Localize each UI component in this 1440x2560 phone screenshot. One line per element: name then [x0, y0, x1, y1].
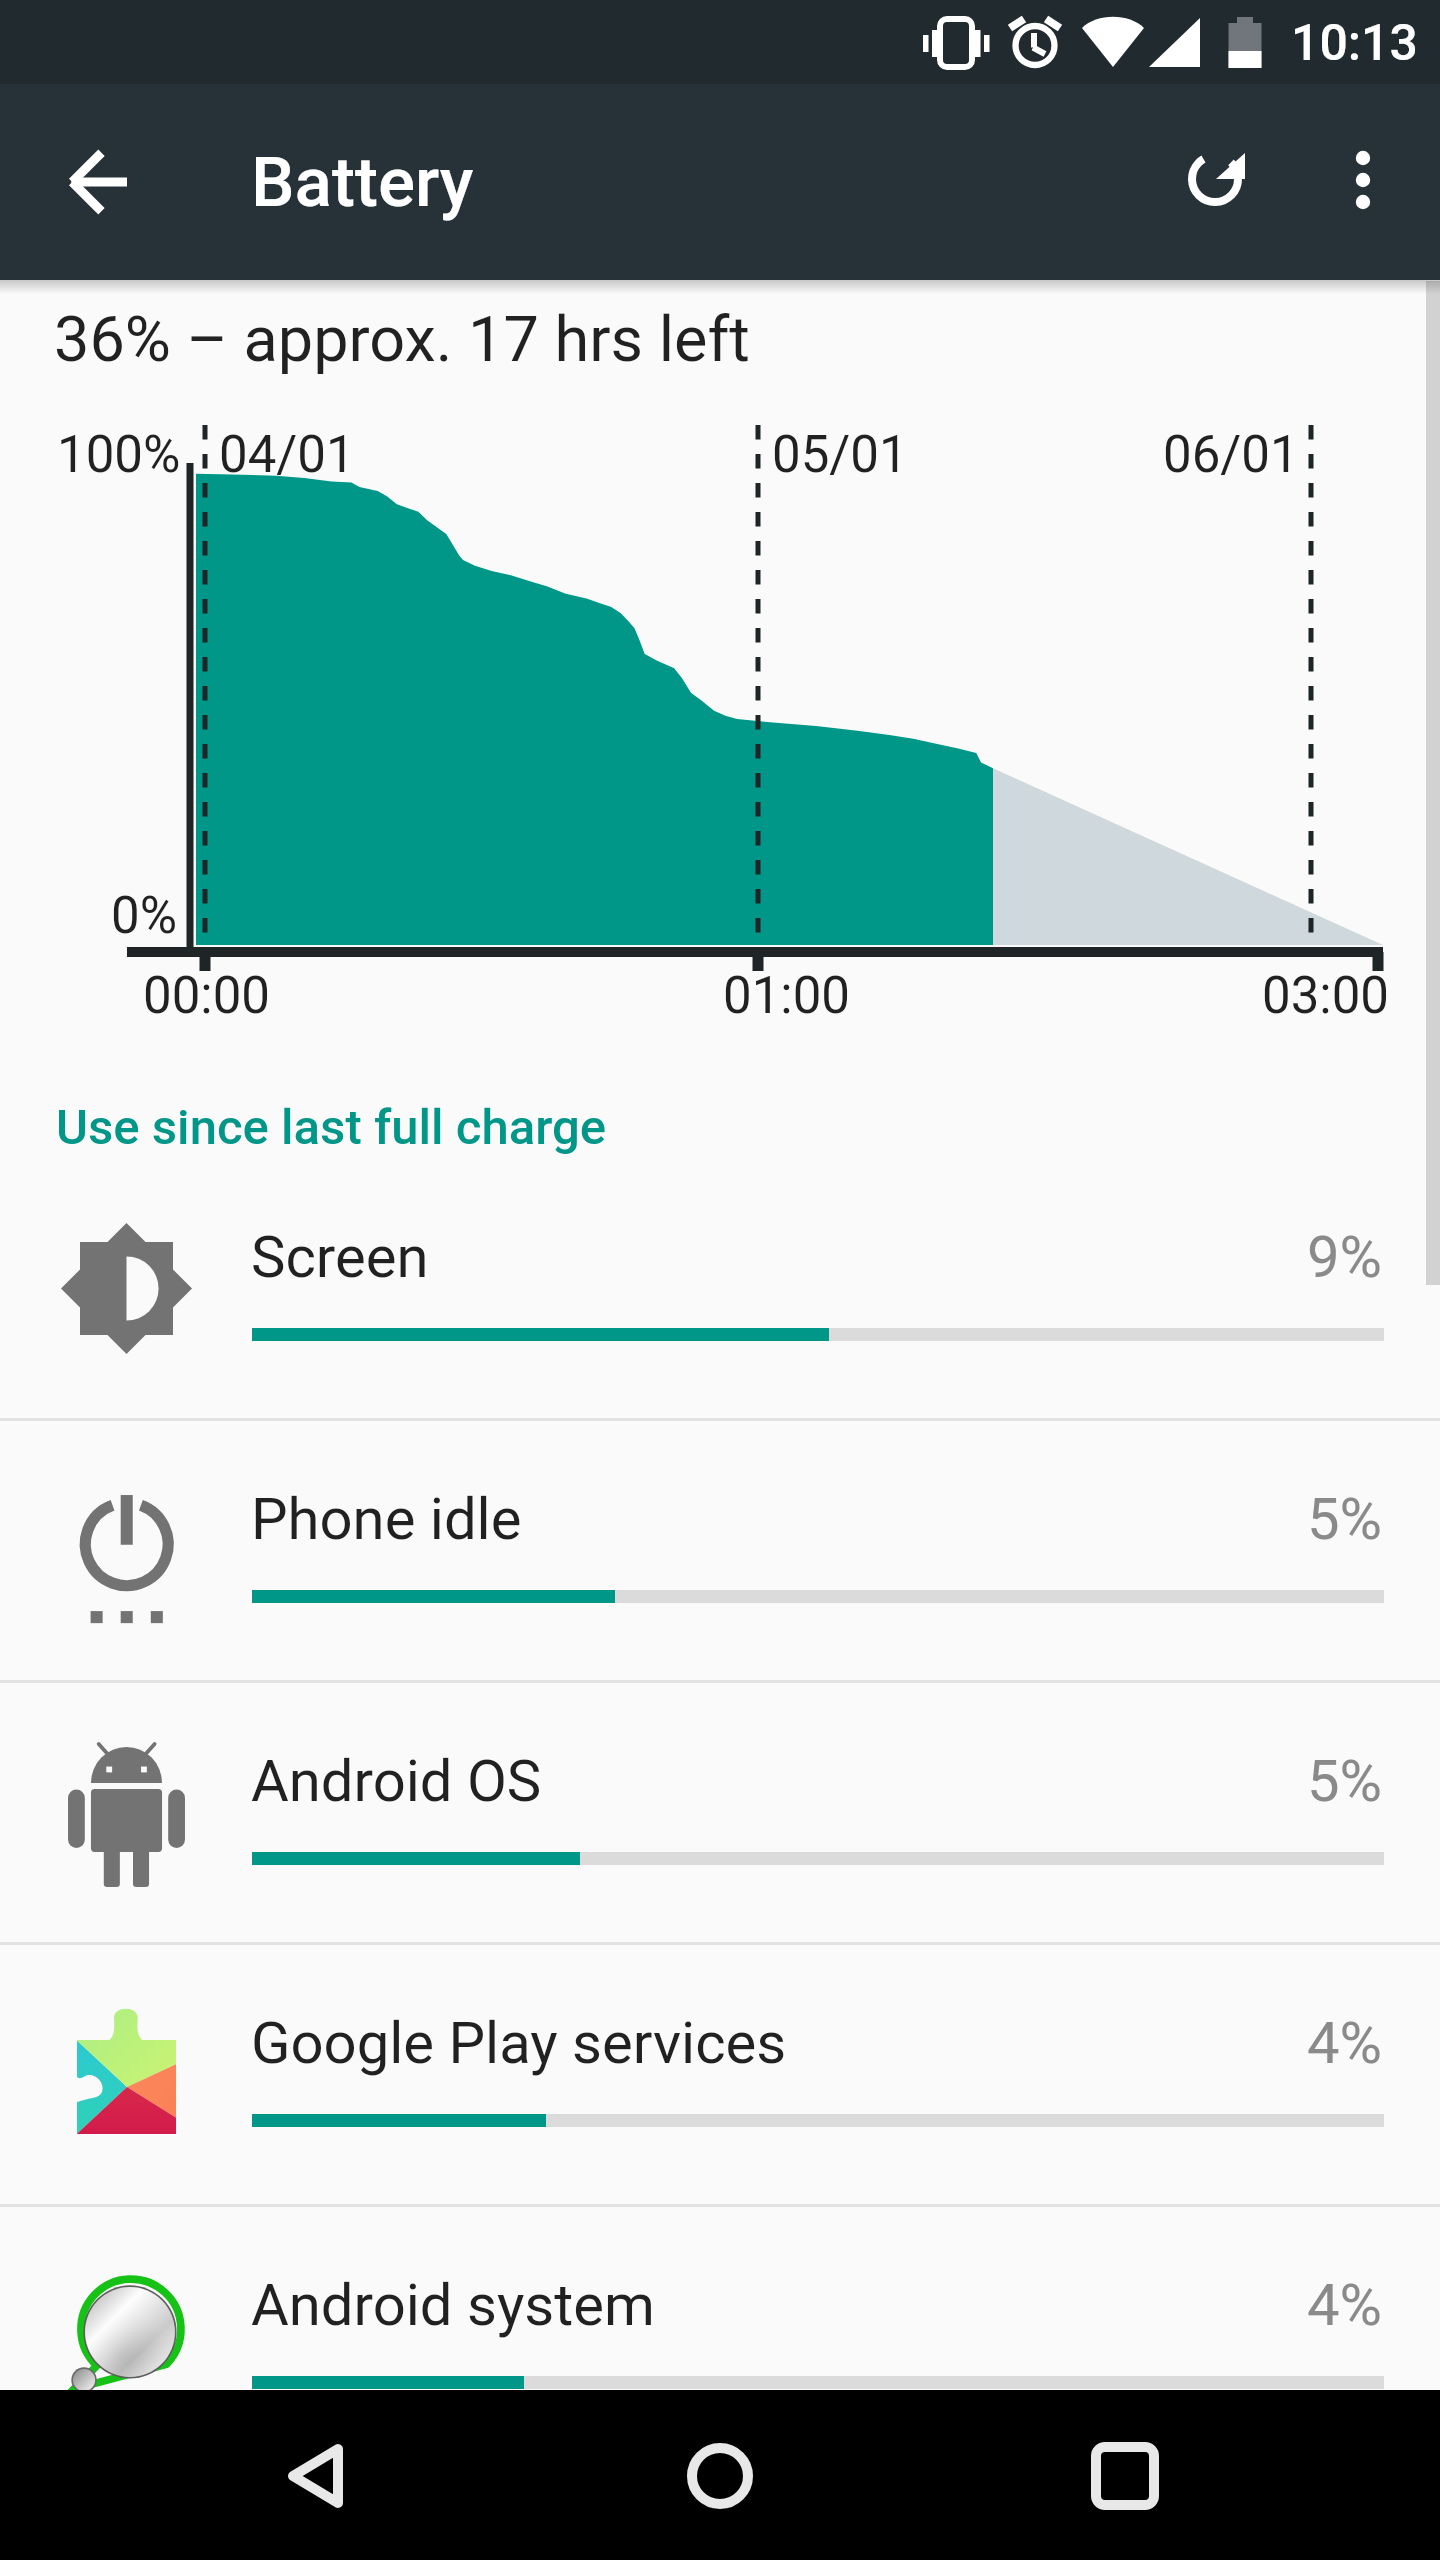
button[interactable]: Back [236, 2396, 396, 2556]
staticText: 06/01 [1163, 425, 1299, 485]
staticText: 5% [1307, 1747, 1383, 1815]
button[interactable]: Refresh [1145, 109, 1285, 249]
button[interactable]: Android system [0, 2207, 1440, 2469]
staticText: Use since last full charge [56, 1099, 607, 1156]
button[interactable]: Navigate up [28, 112, 168, 252]
button[interactable]: Android OS [0, 1683, 1440, 1945]
staticText: 36% – approx. 17 hrs left [54, 303, 750, 377]
staticText: Android OS [251, 1747, 542, 1815]
staticText: 05/01 [772, 425, 908, 485]
staticText: Screen [251, 1223, 429, 1291]
button[interactable]: Phone idle [0, 1421, 1440, 1683]
button[interactable]: Screen [0, 1159, 1440, 1421]
staticText: Phone idle [251, 1485, 522, 1553]
staticText: 10:13 [1291, 14, 1418, 73]
staticText: 0% [111, 886, 178, 946]
staticText: 04/01 [219, 425, 355, 485]
staticText: 00:00 [143, 966, 271, 1026]
staticText: Android system [251, 2271, 655, 2339]
button[interactable]: Home [640, 2396, 800, 2556]
staticText: 4% [1307, 2009, 1383, 2077]
button[interactable]: Google Play services [0, 1945, 1440, 2207]
staticText: 03:00 [1262, 966, 1390, 1026]
staticText: 4% [1307, 2271, 1383, 2339]
staticText: 5% [1307, 1485, 1383, 1553]
staticText: 9% [1307, 1223, 1383, 1291]
button[interactable]: Recent apps [1045, 2396, 1205, 2556]
button[interactable]: More options [1293, 110, 1433, 250]
staticText: Battery [251, 142, 474, 223]
staticText: Google Play services [251, 2009, 787, 2077]
staticText: 100% [57, 425, 181, 485]
staticText: 01:00 [723, 966, 851, 1026]
